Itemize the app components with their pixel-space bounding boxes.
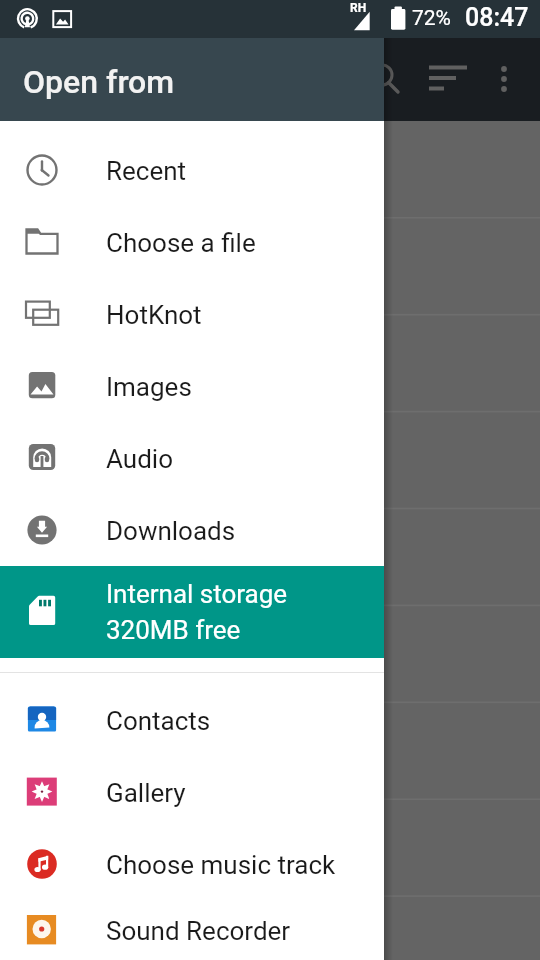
button[interactable]: Audio [0,422,384,494]
staticText: Open from [23,63,175,101]
staticText: 08:47 [465,3,529,32]
staticText: Sound Recorder [106,916,291,946]
staticText: 72% [412,6,451,31]
staticText: Contacts [106,706,211,736]
staticText: 320MB free [106,615,241,645]
button[interactable]: Downloads [0,494,384,566]
staticText: Audio [106,444,173,474]
staticText: HotKnot [106,300,202,330]
button[interactable]: More options [476,51,532,107]
button[interactable]: Choose music track [0,828,384,900]
button[interactable]: Recent [0,134,384,206]
button[interactable]: Choose a file [0,206,384,278]
staticText: Images [106,372,192,402]
button[interactable]: Search [357,51,413,107]
staticText: Choose music track [106,850,336,880]
button[interactable]: Contacts [0,684,384,756]
staticText: Gallery [106,778,186,808]
staticText: Internal storage [106,579,288,609]
staticText: Recent [106,156,187,186]
button[interactable]: Internal storage [0,566,384,658]
button[interactable]: Sort [421,51,477,107]
button[interactable]: Sound Recorder [0,900,384,960]
button[interactable]: Images [0,350,384,422]
button[interactable]: HotKnot [0,278,384,350]
staticText: RH [350,1,367,15]
staticText: Downloads [106,516,236,546]
button[interactable]: Gallery [0,756,384,828]
staticText: Choose a file [106,228,256,258]
